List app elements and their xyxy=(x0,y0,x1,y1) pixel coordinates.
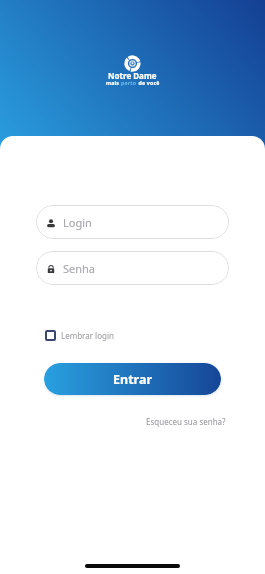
staticText: Lembrar login xyxy=(61,330,114,341)
button[interactable]: Entrar xyxy=(44,363,221,395)
button[interactable]: Lembrar login xyxy=(45,330,114,341)
staticText: mais xyxy=(106,79,121,86)
staticText: Esqueceu sua senha? xyxy=(146,416,226,427)
button[interactable]: Senha xyxy=(36,251,229,285)
staticText: de você xyxy=(137,79,160,86)
staticText: Notre Dame xyxy=(108,70,157,81)
staticText: perto xyxy=(121,79,137,86)
other: Notre Dame logo xyxy=(124,55,141,72)
button[interactable]: Login xyxy=(36,205,229,239)
button[interactable]: Esqueceu sua senha? xyxy=(141,412,231,431)
staticText: Senha xyxy=(63,261,96,276)
staticText: Entrar xyxy=(113,371,152,388)
staticText: Login xyxy=(63,215,92,230)
